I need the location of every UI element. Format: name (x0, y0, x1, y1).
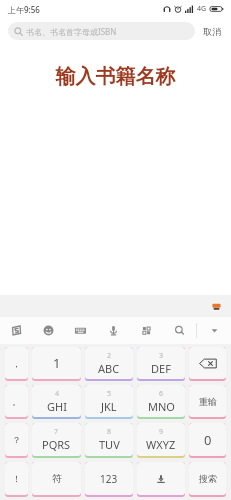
button[interactable]: 5 (85, 385, 133, 419)
staticText: MNO (148, 399, 175, 414)
button[interactable]: Sogou input method (0, 317, 32, 344)
staticText: DEF (151, 361, 171, 376)
button[interactable]: Voice input (97, 317, 130, 344)
button[interactable]: 3 (137, 347, 185, 381)
button[interactable]: Hide keyboard (197, 317, 231, 344)
staticText: 6 (159, 389, 164, 399)
staticText: ！ (12, 473, 21, 484)
staticText: 4G (197, 4, 207, 14)
button[interactable]: ？ (5, 423, 28, 458)
button[interactable]: Keyboard layout (64, 317, 97, 344)
button[interactable]: 搜索 (189, 462, 226, 497)
staticText: ABC (98, 361, 120, 376)
button[interactable]: 6 (137, 385, 185, 419)
button[interactable]: ！ (5, 462, 28, 497)
staticText: 符 (52, 472, 62, 485)
staticText: 。 (12, 396, 21, 407)
staticText: TUV (99, 437, 120, 452)
staticText: 123 (100, 472, 118, 486)
staticText: 7 (54, 427, 59, 437)
staticText: 输入书籍名称 (0, 64, 231, 89)
staticText: 5 (107, 389, 112, 399)
button[interactable]: Emoji (32, 317, 64, 344)
staticText: 搜索 (199, 473, 217, 484)
button[interactable]: More tools (130, 317, 163, 344)
button[interactable]: 8 (85, 423, 133, 458)
staticText: 9 (159, 427, 164, 437)
button[interactable]: 1 (32, 347, 81, 381)
button[interactable]: 7 (32, 423, 81, 458)
button[interactable]: 取消 (195, 23, 223, 40)
staticText: PQRS (42, 437, 71, 452)
staticText: JKL (101, 399, 117, 414)
button[interactable]: 4 (32, 385, 81, 419)
button[interactable]: 书名、书名首字母或ISBN (8, 22, 195, 40)
button[interactable]: Voice input (137, 462, 185, 497)
button[interactable]: 符 (32, 462, 81, 497)
staticText: 1 (53, 354, 61, 372)
button[interactable]: 0 (189, 423, 226, 458)
button[interactable]: 重输 (189, 385, 226, 419)
staticText: 上午9:56 (8, 4, 40, 15)
staticText: 2 (107, 351, 112, 361)
button[interactable]: 123 (85, 462, 133, 497)
staticText: 0 (204, 431, 212, 449)
staticText: ？ (12, 434, 21, 445)
staticText: 3 (159, 351, 164, 361)
staticText: 8 (107, 427, 112, 437)
staticText: 重输 (199, 396, 217, 407)
staticText: 书名、书名首字母或ISBN (26, 26, 117, 37)
staticText: ， (12, 358, 21, 369)
button[interactable]: Search (163, 317, 196, 344)
staticText: GHI (47, 399, 67, 414)
button[interactable]: 。 (5, 385, 28, 419)
staticText: WXYZ (146, 437, 176, 452)
staticText: 取消 (203, 26, 221, 37)
button[interactable]: 2 (85, 347, 133, 381)
button[interactable]: Promotion (210, 300, 223, 313)
button[interactable]: ， (5, 347, 28, 381)
button[interactable]: 9 (137, 423, 185, 458)
button[interactable]: Delete (189, 347, 226, 381)
staticText: 4 (55, 389, 60, 399)
